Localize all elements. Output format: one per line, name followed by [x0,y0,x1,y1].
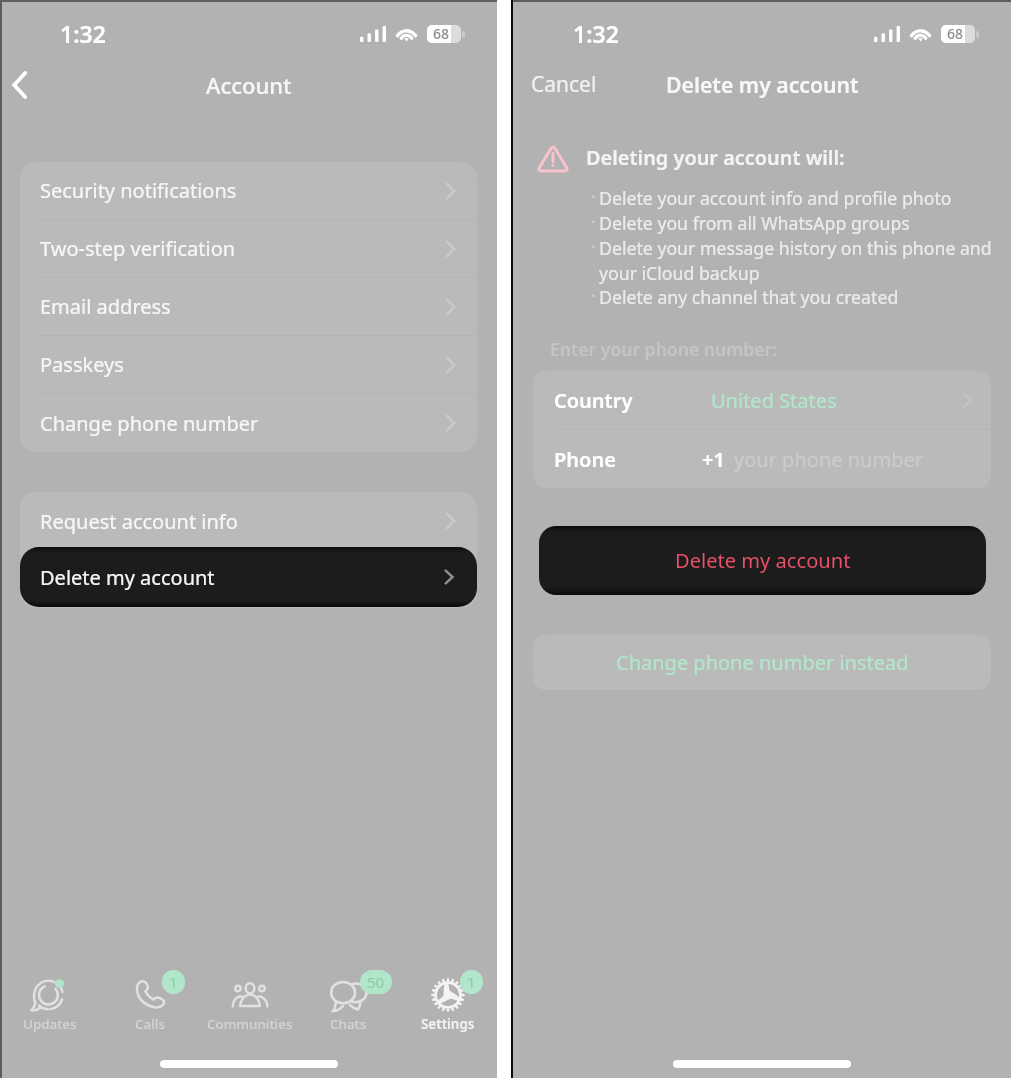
staticText: United States [711,387,837,414]
staticText: Change phone number [40,410,259,437]
button[interactable]: 1 [100,966,200,1044]
staticText: Updates [23,1015,77,1033]
button[interactable]: Two-step verification [20,220,477,278]
staticText: Account [206,70,292,100]
staticText: · [591,209,596,234]
staticText: · [591,283,596,308]
staticText: Chats [330,1015,367,1033]
button[interactable]: Security notifications [20,162,477,220]
staticText: Request account info [40,508,238,535]
button[interactable]: Country [533,371,991,429]
button[interactable]: Passkeys [20,336,477,394]
button[interactable]: Communities [200,966,299,1044]
button[interactable]: Change phone number instead [533,635,991,690]
button[interactable]: Request account info [20,492,477,550]
staticText: Passkeys [40,351,124,378]
staticText: 1:32 [60,18,106,49]
staticText: Delete any channel that you created [599,285,899,309]
staticText: Calls [135,1015,165,1033]
staticText: Settings [421,1015,475,1033]
staticText: Country [554,387,633,414]
staticText: · [591,234,596,259]
staticText: Delete my account [40,564,215,591]
staticText: Deleting your account will: [586,144,845,171]
staticText: Delete you from all WhatsApp groups [599,211,910,235]
staticText: Two-step verification [40,235,236,262]
staticText: 1:32 [573,18,619,49]
button[interactable]: Email address [20,278,477,336]
button[interactable]: 1 [398,966,497,1044]
staticText: Phone [554,446,616,473]
staticText: 1 [169,972,178,992]
staticText: · [591,184,596,209]
button[interactable]: Cancel [527,64,601,105]
staticText: 50 [367,972,385,992]
button[interactable]: Delete my account [20,547,477,607]
staticText: Communities [207,1015,293,1033]
staticText: Change phone number instead [616,649,909,676]
staticText: Email address [40,293,171,320]
button[interactable]: Change phone number [20,394,477,452]
staticText: Cancel [531,70,597,99]
staticText: 68 [433,24,450,43]
staticText: your phone number [734,446,923,473]
staticText: 1 [467,972,476,992]
button[interactable]: 50 [299,966,398,1044]
staticText: 68 [947,24,964,43]
button[interactable]: Back [0,66,38,104]
button[interactable]: Updates [0,966,100,1044]
button[interactable]: Delete my account [539,526,986,595]
staticText: Security notifications [40,177,237,204]
staticText: +1 [702,446,725,473]
staticText: Enter your phone number: [550,337,777,361]
staticText: Delete my account [666,70,859,99]
staticText: Delete your message history on this phon… [599,236,1001,285]
staticText: Delete my account [675,547,851,574]
staticText: Delete your account info and profile pho… [599,186,952,210]
